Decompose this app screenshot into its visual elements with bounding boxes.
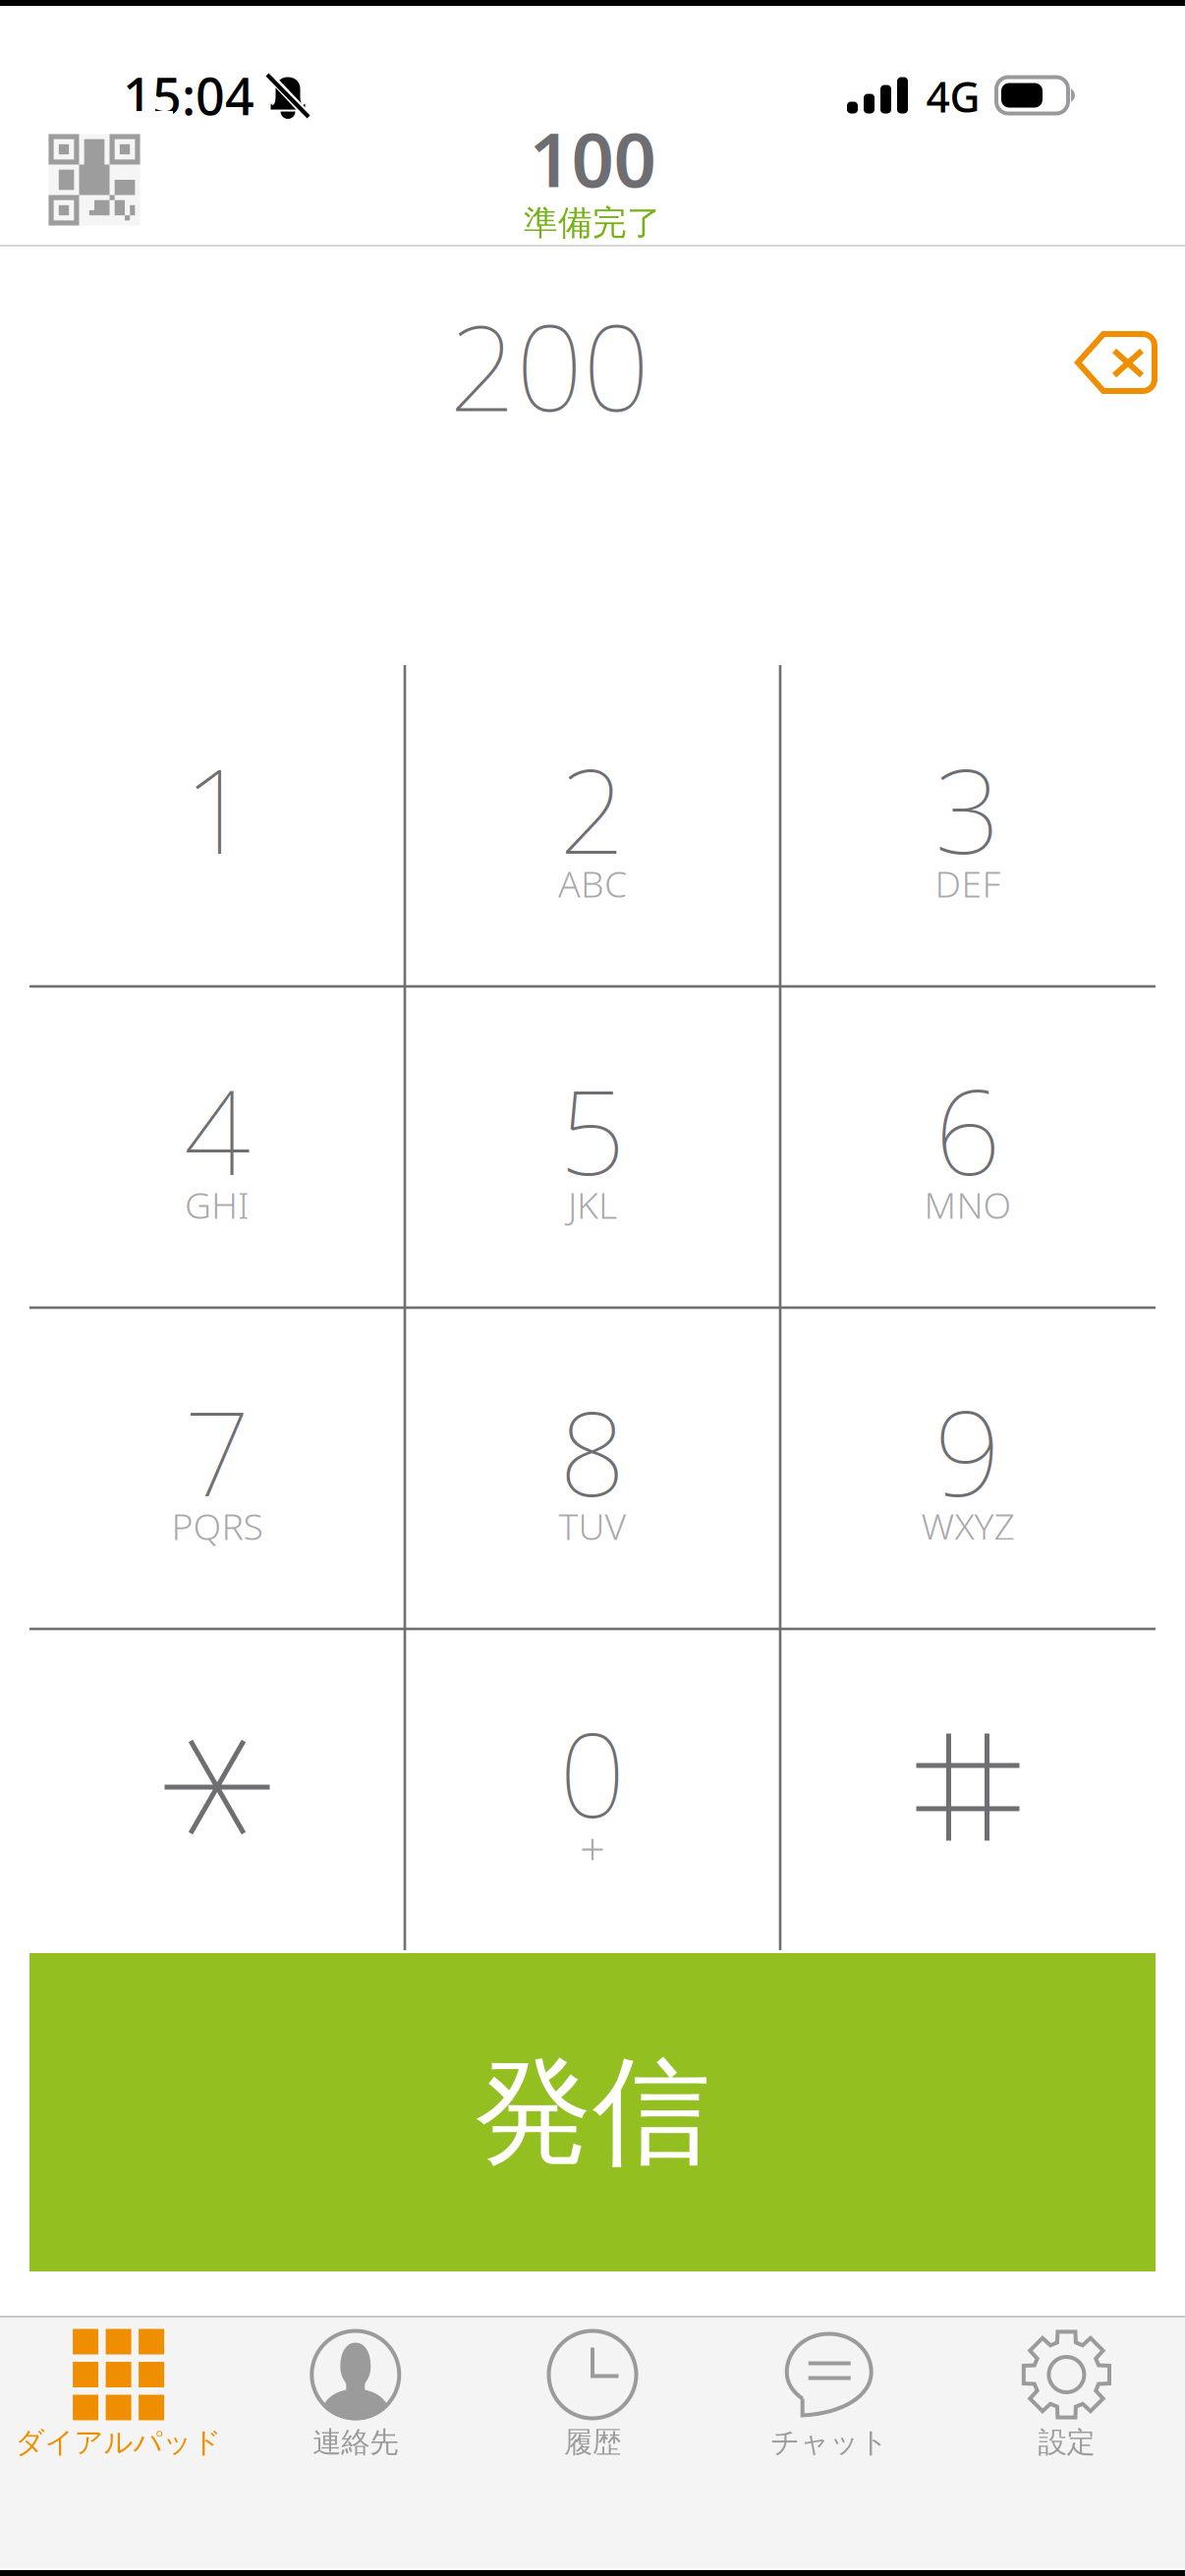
staticText: 6 [934, 1050, 1001, 1209]
button[interactable]: 3 [780, 665, 1156, 986]
staticText: 0 [559, 1693, 626, 1852]
staticText: TUV [559, 1501, 626, 1551]
button[interactable]: Delete [1027, 289, 1185, 436]
button[interactable]: star [29, 1629, 405, 1950]
staticText: 2 [559, 729, 626, 888]
button[interactable]: チャット [711, 2318, 948, 2504]
button[interactable]: 0 [405, 1629, 780, 1950]
staticText: 準備完了 [524, 202, 661, 245]
button[interactable]: 6 [780, 986, 1156, 1308]
staticText: 連絡先 [313, 2424, 398, 2461]
button[interactable]: 履歴 [474, 2318, 711, 2504]
staticText: WXYZ [921, 1501, 1015, 1551]
staticText: 発信 [475, 2038, 710, 2187]
staticText: MNO [924, 1180, 1012, 1229]
button[interactable]: QR code [16, 111, 173, 249]
button[interactable]: 8 [405, 1308, 780, 1629]
staticText: GHI [185, 1180, 250, 1229]
staticText: 設定 [1038, 2424, 1095, 2461]
button[interactable]: 設定 [948, 2318, 1185, 2504]
staticText: JKL [568, 1180, 617, 1229]
button[interactable]: 4 [29, 986, 405, 1308]
staticText: 3 [934, 729, 1001, 888]
staticText: 履歴 [564, 2424, 621, 2461]
staticText: + [580, 1818, 605, 1878]
staticText: 4 [184, 1050, 251, 1209]
button[interactable]: 発信 [29, 1953, 1156, 2271]
staticText: 7 [184, 1372, 251, 1530]
button[interactable]: 2 [405, 665, 780, 986]
staticText: チャット [771, 2424, 888, 2461]
button[interactable]: 7 [29, 1308, 405, 1629]
button[interactable]: 1 [29, 665, 405, 986]
staticText: 200 [449, 285, 649, 446]
staticText: ABC [558, 858, 627, 908]
staticText: 1 [184, 729, 251, 888]
button[interactable]: ダイアルパッド [0, 2318, 237, 2504]
button[interactable]: 連絡先 [237, 2318, 474, 2504]
staticText: 15:04 [123, 61, 254, 130]
button[interactable]: 9 [780, 1308, 1156, 1629]
staticText: PQRS [171, 1501, 263, 1551]
staticText: 4G [926, 68, 980, 125]
staticText: DEF [935, 858, 1001, 908]
staticText: 100 [529, 107, 656, 209]
button[interactable]: 5 [405, 986, 780, 1308]
staticText: ダイアルパッド [15, 2424, 222, 2461]
staticText: 8 [559, 1372, 626, 1530]
staticText: 5 [559, 1050, 626, 1209]
button[interactable]: pound [780, 1629, 1156, 1950]
staticText: 9 [934, 1372, 1001, 1530]
